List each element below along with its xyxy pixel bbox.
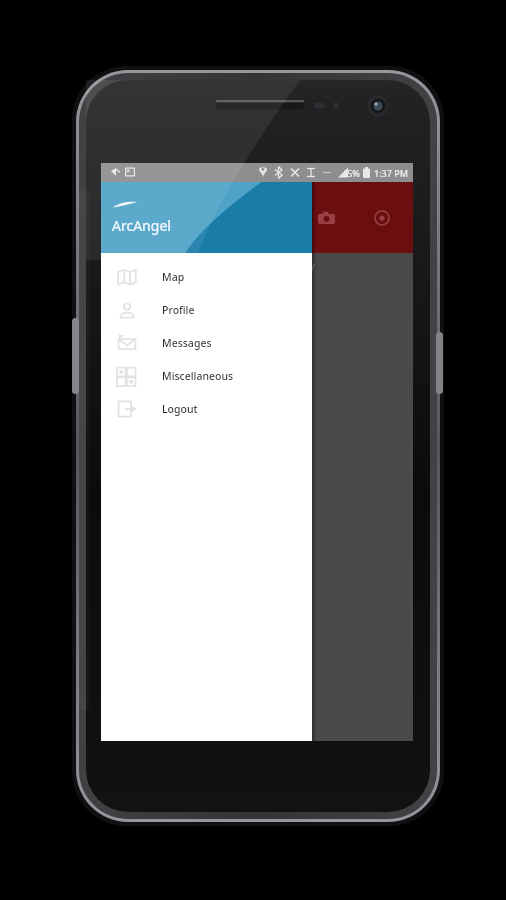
staticText: Map: [162, 270, 185, 284]
staticText: Messages: [162, 336, 212, 350]
staticText: Miscellaneous: [162, 369, 234, 383]
button[interactable]: Miscellaneous: [101, 359, 312, 392]
staticText: ry: [305, 259, 315, 273]
button[interactable]: Camera: [303, 195, 349, 241]
button[interactable]: Record: [359, 195, 405, 241]
staticText: Profile: [162, 303, 195, 317]
staticText: ArcAngel: [112, 216, 171, 235]
staticText: 45%: [342, 167, 360, 179]
button[interactable]: Profile: [101, 293, 312, 326]
button[interactable]: Logout: [101, 392, 312, 425]
button[interactable]: Messages: [101, 326, 312, 359]
staticText: 1:37 PM: [374, 167, 408, 179]
staticText: Logout: [162, 402, 198, 416]
button[interactable]: Map: [101, 260, 312, 293]
